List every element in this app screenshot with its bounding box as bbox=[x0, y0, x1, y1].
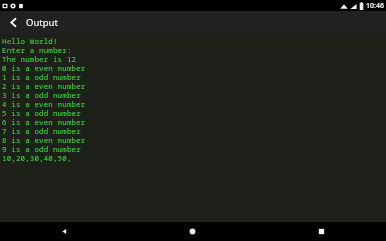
staticText: 3 is a odd number bbox=[2, 90, 81, 99]
staticText: 1 is a odd number bbox=[2, 72, 81, 81]
staticText: 10:46 bbox=[366, 1, 384, 11]
button[interactable]: Navigate up bbox=[0, 11, 26, 34]
staticText: 8 is a even number bbox=[2, 135, 86, 144]
staticText: 10,20,30,40,50, bbox=[2, 153, 72, 162]
staticText: 7 is a odd number bbox=[2, 126, 81, 135]
staticText: 4 is a even number bbox=[2, 99, 86, 108]
staticText: 5 is a odd number bbox=[2, 108, 81, 117]
staticText: The number is 12 bbox=[2, 54, 77, 63]
button[interactable]: Back bbox=[0, 222, 128, 241]
staticText: 9 is a odd number bbox=[2, 144, 81, 153]
staticText: 2 is a even number bbox=[2, 81, 86, 90]
staticText: Output bbox=[26, 16, 58, 29]
button[interactable]: Home bbox=[128, 222, 257, 241]
staticText: Hello World! bbox=[2, 36, 58, 45]
staticText: 0 is a even number bbox=[2, 63, 86, 72]
button[interactable]: Recent apps bbox=[257, 222, 386, 241]
staticText: Enter a number: bbox=[2, 45, 72, 54]
staticText: 6 is a even number bbox=[2, 117, 86, 126]
